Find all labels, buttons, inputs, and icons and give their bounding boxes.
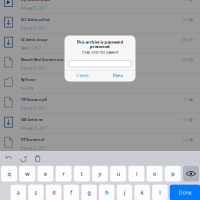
button[interactable]: Big Buck Bunny.mp4: [0, 0, 200, 13]
staticText: RTF Document.rtf: [21, 138, 44, 142]
staticText: RAR Archive.rar: [21, 118, 42, 122]
button[interactable]: RTF Document.rtf: [0, 133, 200, 153]
staticText: u: [117, 170, 120, 177]
button[interactable]: r: [56, 166, 72, 181]
button[interactable]: u: [110, 166, 126, 181]
staticText: February 23, 2017: [21, 107, 47, 110]
button[interactable]: p: [165, 166, 181, 181]
staticText: This archive is password: [76, 39, 123, 45]
staticText: PDF Document.pdf: [21, 98, 47, 102]
button[interactable]: PDF Document.pdf: [0, 93, 200, 113]
staticText: Cancel: [76, 73, 88, 78]
button[interactable]: Done: [100, 70, 135, 80]
button[interactable]: t: [74, 166, 90, 181]
staticText: a: [17, 189, 20, 196]
button[interactable]: Redo: [18, 153, 29, 164]
button[interactable]: j: [117, 185, 132, 200]
staticText: Done: [113, 73, 123, 78]
button[interactable]: f: [64, 185, 79, 200]
staticText: p: [171, 170, 174, 177]
staticText: Microsoft Word Document.docx: [21, 58, 63, 62]
staticText: 77 MB: [184, 98, 193, 102]
button[interactable]: Cancel: [64, 70, 100, 80]
button[interactable]: a: [10, 185, 26, 200]
staticText: February 23, 2017: [21, 147, 47, 150]
staticText: q: [7, 170, 10, 177]
staticText: BZ2 Archive.pdf.bz2: [21, 18, 50, 22]
staticText: February 23, 2017: [21, 27, 47, 30]
button[interactable]: o: [147, 166, 163, 181]
button[interactable]: w: [19, 166, 35, 181]
staticText: y: [98, 170, 101, 177]
button[interactable]: h: [99, 185, 114, 200]
staticText: o: [153, 170, 156, 177]
staticText: j: [124, 189, 125, 196]
staticText: March 2, 2017: [21, 47, 41, 50]
button[interactable]: GZ Archive.docx.gz: [0, 33, 200, 53]
staticText: r: [63, 170, 65, 177]
staticText: k: [141, 189, 144, 196]
staticText: 1.2 MB: [183, 138, 193, 142]
staticText: i: [136, 170, 137, 177]
button[interactable]: Microsoft Word Document.docx: [0, 53, 200, 73]
staticText: February 23, 2017: [21, 7, 47, 10]
staticText: 203 KB: [182, 38, 193, 42]
staticText: e: [44, 170, 47, 177]
staticText: 13.7 MB: [181, 0, 193, 2]
button[interactable]: My Photos: [0, 73, 200, 93]
staticText: d: [52, 189, 55, 196]
button[interactable]: y: [92, 166, 108, 181]
button[interactable]: Done: [170, 185, 200, 200]
button[interactable]: k: [134, 185, 150, 200]
staticText: My Photos: [21, 78, 35, 82]
button[interactable]: d: [46, 185, 61, 200]
staticText: February 23, 2017: [21, 127, 47, 130]
staticText: Done: [178, 189, 191, 196]
button[interactable]: BZ2 Archive.pdf.bz2: [0, 13, 200, 33]
staticText: t: [81, 170, 83, 177]
button[interactable]: Undo: [3, 153, 14, 164]
staticText: 16 items: [21, 87, 33, 90]
staticText: 233 KB: [182, 58, 193, 62]
button[interactable]: q: [1, 166, 17, 181]
button[interactable]: RAR Archive.rar: [0, 113, 200, 133]
button[interactable]: i: [128, 166, 144, 181]
staticText: h: [105, 189, 108, 196]
staticText: Please enter the password: [81, 51, 118, 54]
button[interactable]: e: [37, 166, 53, 181]
staticText: l: [159, 189, 160, 196]
staticText: Big Buck Bunny.mp4: [21, 0, 50, 2]
button[interactable]: l: [152, 185, 168, 200]
button[interactable]: Paste: [32, 153, 43, 164]
button[interactable]: g: [81, 185, 97, 200]
staticText: w: [25, 170, 29, 177]
staticText: f: [70, 189, 72, 196]
button[interactable]: s: [28, 185, 44, 200]
staticText: g: [87, 189, 90, 196]
staticText: protected: [90, 44, 110, 49]
staticText: February 23, 2017: [21, 67, 47, 70]
staticText: 3.2 MB: [183, 118, 193, 122]
staticText: GZ Archive.docx.gz: [21, 38, 47, 42]
button[interactable]: Show password: [183, 166, 199, 181]
staticText: 3.6 MB: [183, 18, 193, 22]
staticText: s: [34, 189, 37, 196]
